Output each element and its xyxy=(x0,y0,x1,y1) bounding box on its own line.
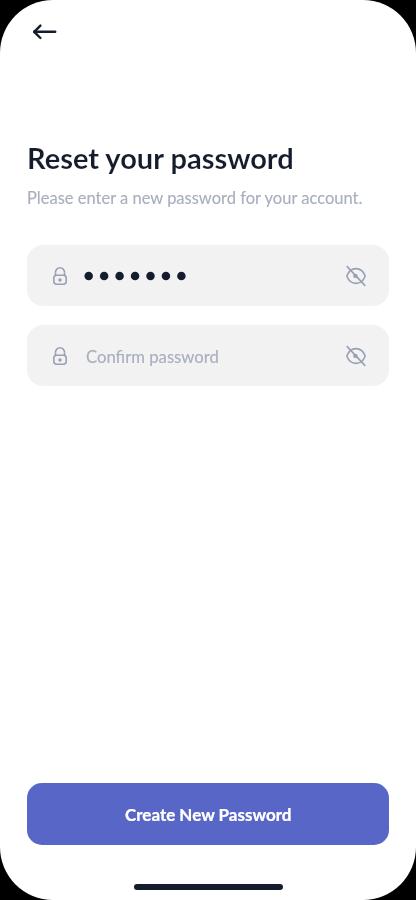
staticText: Confirm password xyxy=(86,347,219,367)
button[interactable]: Back xyxy=(16,8,62,54)
staticText: Please enter a new password for your acc… xyxy=(27,188,363,208)
button[interactable]: Toggle password visibility xyxy=(336,337,376,375)
button[interactable]: Confirm password xyxy=(27,325,389,386)
button[interactable]: Create New Password xyxy=(27,783,389,845)
staticText: Create New Password xyxy=(125,804,292,824)
button[interactable]: Toggle password visibility xyxy=(336,257,376,295)
staticText: Reset your password xyxy=(27,140,294,175)
button[interactable]: Toggle password visibility xyxy=(27,245,389,306)
